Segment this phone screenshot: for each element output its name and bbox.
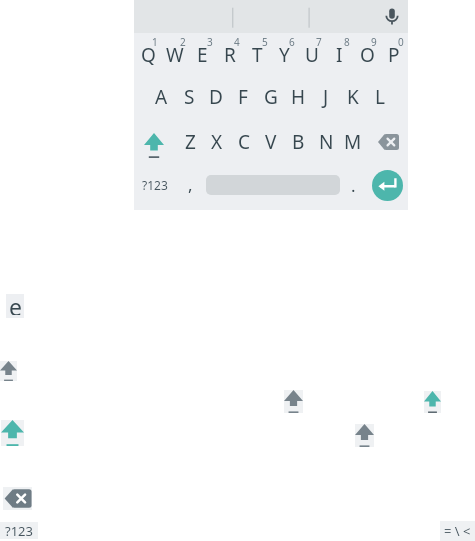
staticText: T <box>252 42 263 68</box>
button[interactable]: D <box>203 77 229 117</box>
staticText: O <box>360 42 375 68</box>
button[interactable]: I <box>326 35 352 75</box>
staticText: = \ < <box>444 522 471 540</box>
button[interactable]: G <box>258 77 284 117</box>
button[interactable] <box>372 170 403 201</box>
button[interactable]: E <box>189 35 215 75</box>
button[interactable]: U <box>299 35 325 75</box>
staticText: N <box>319 129 334 155</box>
staticText: G <box>264 84 278 110</box>
button[interactable]: F <box>230 77 256 117</box>
staticText: M <box>344 129 362 155</box>
button[interactable]: X <box>204 122 230 162</box>
button[interactable]: , <box>177 164 203 204</box>
staticText: W <box>166 42 184 68</box>
button[interactable]: = \ < <box>440 521 475 541</box>
staticText: B <box>292 129 305 155</box>
button[interactable]: W <box>162 35 188 75</box>
button[interactable]: T <box>244 35 270 75</box>
button[interactable]: P <box>381 35 407 75</box>
staticText: S <box>184 84 195 110</box>
staticText: 7 <box>316 35 322 49</box>
staticText: K <box>347 84 359 110</box>
button[interactable] <box>424 391 441 413</box>
staticText: U <box>305 42 319 68</box>
button[interactable]: ?123 <box>138 165 172 205</box>
staticText: ?123 <box>5 522 33 539</box>
staticText: E <box>197 42 208 68</box>
staticText: 3 <box>207 35 213 49</box>
staticText: F <box>238 84 248 110</box>
staticText: Z <box>185 129 196 155</box>
button[interactable]: . <box>340 165 366 205</box>
staticText: C <box>238 129 251 155</box>
button[interactable]: ?123 <box>0 522 38 539</box>
staticText: L <box>375 84 385 110</box>
staticText: R <box>224 42 236 68</box>
button[interactable]: H <box>285 77 311 117</box>
button[interactable]: A <box>148 77 174 117</box>
staticText: 4 <box>234 35 240 49</box>
button[interactable] <box>144 133 164 158</box>
staticText: X <box>211 129 223 155</box>
button[interactable]: K <box>340 77 366 117</box>
button[interactable]: M <box>340 122 366 162</box>
button[interactable]: N <box>313 122 339 162</box>
staticText: D <box>209 84 223 110</box>
button[interactable]: C <box>231 122 257 162</box>
button[interactable]: B <box>285 122 311 162</box>
button[interactable] <box>134 0 408 33</box>
button[interactable]: S <box>176 77 202 117</box>
button[interactable] <box>378 134 399 150</box>
button[interactable] <box>0 361 17 381</box>
staticText: Q <box>141 42 156 68</box>
staticText: A <box>155 84 168 110</box>
button[interactable]: L <box>367 77 393 117</box>
staticText: . <box>351 174 356 197</box>
staticText: Y <box>279 42 290 68</box>
staticText: 9 <box>371 35 377 49</box>
button[interactable]: R <box>217 35 243 75</box>
button[interactable]: O <box>354 35 380 75</box>
staticText: e <box>9 291 22 315</box>
button[interactable] <box>3 487 32 510</box>
button[interactable]: Q <box>135 35 161 75</box>
button[interactable]: Y <box>271 35 297 75</box>
staticText: 0 <box>398 35 404 49</box>
staticText: P <box>388 42 400 68</box>
button[interactable]: J <box>313 77 339 117</box>
button[interactable]: e <box>6 294 24 318</box>
staticText: 6 <box>289 35 295 49</box>
staticText: 2 <box>180 35 186 49</box>
staticText: , <box>188 173 193 196</box>
staticText: 1 <box>152 35 158 49</box>
button[interactable] <box>284 390 303 413</box>
staticText: ?123 <box>142 177 168 193</box>
staticText: I <box>336 42 343 68</box>
button[interactable] <box>1 420 24 446</box>
staticText: V <box>265 129 277 155</box>
button[interactable]: V <box>258 122 284 162</box>
staticText: 8 <box>344 35 350 49</box>
staticText: H <box>291 84 306 110</box>
staticText: 5 <box>262 35 268 49</box>
staticText: J <box>323 84 329 110</box>
button[interactable]: Z <box>177 122 203 162</box>
button[interactable] <box>355 424 374 447</box>
